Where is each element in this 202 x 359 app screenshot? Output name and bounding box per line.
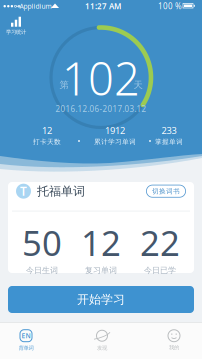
staticText: 233: [161, 124, 176, 137]
staticText: 1912: [105, 124, 125, 137]
staticText: Applidium: [19, 2, 51, 11]
staticText: 复习单词: [85, 265, 117, 275]
button[interactable]: 学习统计: [0, 16, 33, 36]
button[interactable]: 我的: [149, 323, 199, 357]
staticText: 11:27 AM: [85, 1, 121, 11]
button[interactable]: T: [16, 183, 85, 199]
staticText: 发现: [97, 345, 107, 351]
staticText: 100 %: [158, 1, 182, 11]
staticText: 2016.12.06-2017.03.12: [55, 104, 146, 114]
button[interactable]: 切换词书: [146, 185, 186, 198]
staticText: 第: [59, 79, 68, 91]
staticText: 50: [22, 219, 62, 265]
button[interactable]: EN: [1, 323, 51, 357]
staticText: 切换词书: [152, 187, 180, 195]
staticText: 今日生词: [26, 265, 58, 275]
staticText: 12: [81, 219, 121, 265]
button[interactable]: 开始学习: [8, 286, 194, 313]
staticText: 我的: [169, 344, 179, 351]
staticText: T: [20, 183, 27, 199]
staticText: 托福单词: [37, 184, 85, 198]
button[interactable]: 发现: [77, 323, 127, 357]
staticText: 掌握单词: [155, 138, 183, 146]
staticText: 天: [133, 79, 142, 91]
staticText: 102: [62, 48, 140, 108]
staticText: 22: [140, 219, 180, 265]
staticText: 学习统计: [6, 29, 26, 35]
staticText: EN: [21, 331, 30, 340]
staticText: 背单词: [18, 345, 33, 351]
staticText: 累计学习单词: [94, 138, 136, 146]
staticText: 打卡天数: [33, 138, 61, 146]
staticText: 12: [42, 124, 52, 137]
staticText: 今日已学: [144, 265, 176, 275]
staticText: 开始学习: [77, 292, 125, 307]
